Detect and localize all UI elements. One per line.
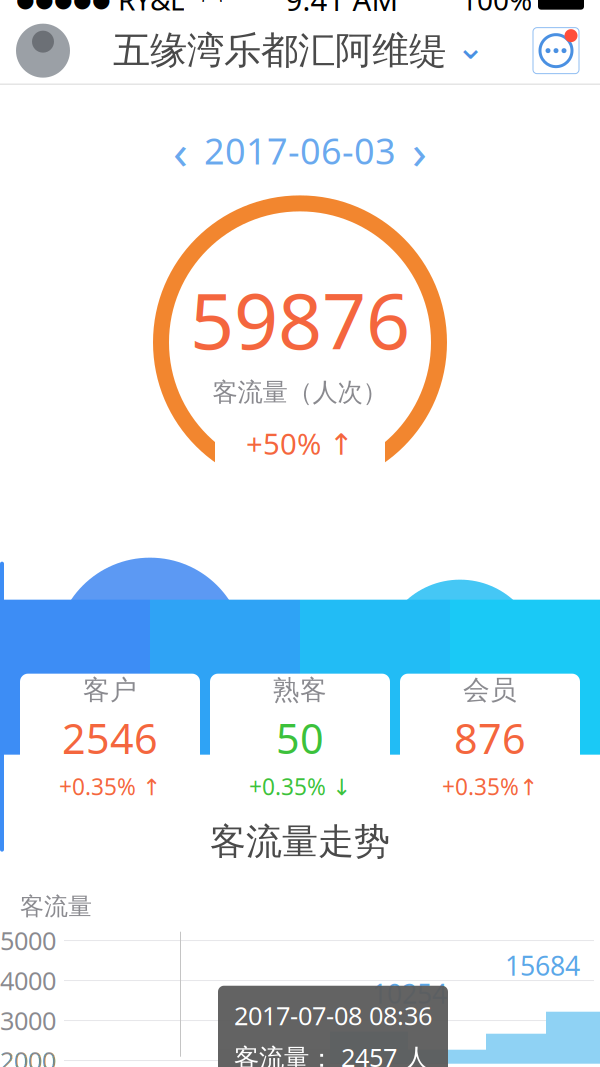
staticText: RY&L	[111, 0, 185, 18]
staticText: 50	[276, 710, 324, 765]
staticText: 客流量走势	[210, 820, 390, 864]
staticText: 10254	[372, 976, 447, 1011]
staticText: 会员	[463, 674, 517, 707]
staticText: 客户	[83, 674, 137, 707]
staticText: 5000	[0, 924, 56, 957]
button[interactable]: Profile	[16, 24, 70, 78]
staticText: 客流量	[20, 892, 92, 921]
button[interactable]: ‹	[0, 111, 600, 190]
staticText: 876	[454, 710, 526, 765]
button[interactable]: 客户	[20, 674, 200, 802]
button[interactable]: 会员	[400, 674, 580, 802]
staticText: 客流量（人次）	[212, 377, 387, 408]
staticText: 100%	[461, 0, 532, 18]
staticText: 客流量： 2457 人	[234, 1040, 429, 1067]
staticText: +50% ↑	[246, 424, 354, 463]
staticText: 2017-07-08 08:36	[234, 999, 432, 1032]
staticText: ●●●●●	[16, 0, 111, 12]
staticText: +0.35%↑	[442, 771, 538, 801]
staticText: 熟客	[273, 674, 327, 707]
staticText: 2546	[62, 710, 158, 765]
staticText: +0.35% ↑	[59, 771, 161, 801]
button[interactable]: Messages	[528, 23, 584, 79]
staticText: ›	[412, 119, 427, 182]
staticText: ◠	[185, 0, 223, 14]
staticText: 4000	[0, 964, 56, 997]
staticText: 59876	[190, 268, 410, 371]
staticText: 2017-06-03	[204, 127, 396, 174]
staticText: +0.35% ↓	[249, 771, 351, 801]
staticText: 9:41 AM	[285, 0, 398, 19]
staticText: 15684	[505, 948, 580, 983]
button[interactable]: 熟客	[210, 674, 390, 802]
staticText: 3000	[0, 1004, 56, 1037]
button[interactable]: 五缘湾乐都汇阿维缇	[113, 27, 485, 74]
staticText: 2000	[0, 1044, 56, 1067]
staticText: ⌄	[456, 27, 485, 66]
staticText: ‹	[173, 119, 188, 182]
staticText: 五缘湾乐都汇阿维缇	[113, 28, 446, 74]
